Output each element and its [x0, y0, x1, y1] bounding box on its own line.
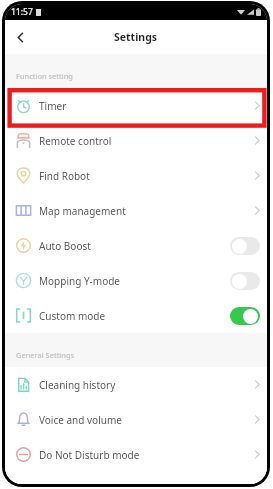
staticText: General Settings	[16, 350, 75, 360]
staticText: Auto Boost	[39, 239, 91, 253]
button[interactable]: Toggle	[230, 237, 260, 255]
button[interactable]: Map management	[5, 193, 267, 228]
staticText: Function setting	[16, 71, 73, 81]
staticText: Voice and volume	[39, 413, 122, 427]
button[interactable]: Remote control	[5, 123, 267, 158]
staticText: Cleaning history	[39, 378, 116, 392]
button[interactable]: Cleaning history	[5, 367, 267, 402]
button[interactable]: Timer	[5, 88, 267, 123]
staticText: 11:57	[11, 6, 33, 18]
button[interactable]: Custom mode	[5, 298, 267, 333]
button[interactable]: Voice and volume	[5, 402, 267, 437]
staticText: Mopping Y-mode	[39, 274, 120, 288]
button[interactable]: Mopping Y-mode	[5, 263, 267, 298]
button[interactable]: Back	[10, 27, 30, 47]
button[interactable]: Auto Boost	[5, 228, 267, 263]
staticText: Remote control	[39, 134, 112, 148]
button[interactable]: Toggle	[230, 307, 260, 325]
staticText: Settings	[114, 30, 158, 44]
button[interactable]: Find Robot	[5, 158, 267, 193]
button[interactable]: Do Not Disturb mode	[5, 437, 267, 472]
staticText: Custom mode	[39, 309, 106, 323]
staticText: Do Not Disturb mode	[39, 448, 140, 462]
staticText: Find Robot	[39, 169, 90, 183]
staticText: Map management	[39, 204, 126, 218]
staticText: Timer	[39, 99, 67, 113]
button[interactable]: Toggle	[230, 272, 260, 290]
